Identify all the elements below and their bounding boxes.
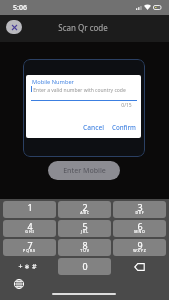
staticText: DEF: [135, 210, 145, 215]
button[interactable]: 6: [113, 220, 166, 237]
button[interactable]: 8: [58, 239, 111, 256]
staticText: Mobile Number: [32, 78, 74, 86]
staticText: + ∗ #: [18, 262, 37, 272]
button[interactable]: 4: [3, 220, 56, 237]
staticText: GHI: [25, 229, 35, 234]
button[interactable]: Confirm: [109, 122, 139, 132]
staticText: Enter a valid number with country code: [33, 87, 126, 94]
button[interactable]: Cancel: [80, 122, 107, 133]
staticText: 9: [137, 239, 143, 251]
button[interactable]: 3: [113, 201, 166, 218]
button[interactable]: 1: [3, 201, 56, 218]
staticText: MNO: [134, 229, 146, 234]
button[interactable]: Backspace: [113, 258, 166, 275]
staticText: ABC: [80, 210, 90, 215]
staticText: 0: [82, 260, 88, 272]
staticText: PQRS: [23, 248, 36, 253]
staticText: Cancel: [83, 123, 104, 132]
staticText: 7: [27, 239, 33, 251]
staticText: 6: [137, 220, 143, 232]
button[interactable]: Change keyboard language: [12, 277, 26, 291]
staticText: JKL: [81, 229, 89, 234]
button[interactable]: 5: [58, 220, 111, 237]
staticText: TUV: [80, 248, 90, 253]
staticText: Scan Qr code: [58, 22, 108, 33]
staticText: Confirm: [112, 123, 136, 131]
button[interactable]: 2: [58, 201, 111, 218]
button[interactable]: 9: [113, 239, 166, 256]
button[interactable]: Close: [6, 20, 22, 34]
staticText: 2: [82, 201, 88, 213]
button[interactable]: 0: [58, 258, 111, 275]
staticText: 5: [82, 220, 88, 232]
button[interactable]: Enter Mobile: [48, 161, 120, 180]
staticText: 5:06: [13, 3, 27, 13]
staticText: 4: [27, 220, 33, 232]
staticText: 1: [27, 201, 33, 213]
button[interactable]: Symbols: [3, 258, 56, 275]
staticText: Enter Mobile: [63, 166, 106, 176]
button[interactable]: 7: [3, 239, 56, 256]
staticText: 3: [137, 201, 143, 213]
staticText: 0/15: [121, 102, 132, 109]
staticText: WXYZ: [133, 248, 147, 253]
staticText: 8: [82, 239, 88, 251]
